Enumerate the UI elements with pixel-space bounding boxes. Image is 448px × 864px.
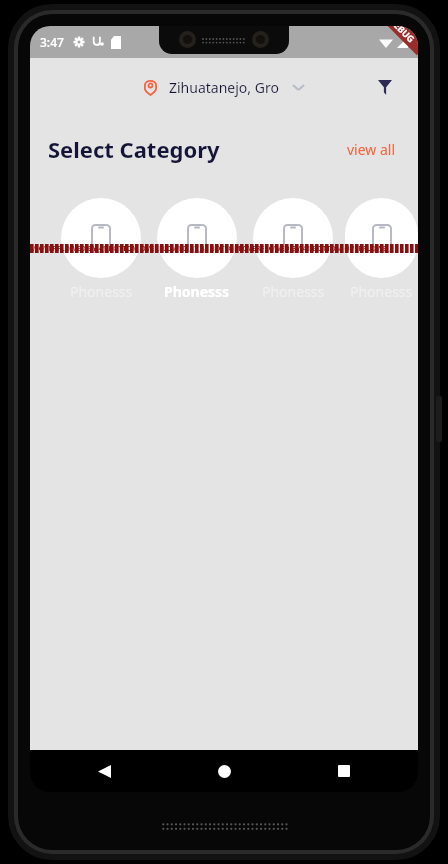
button[interactable]: Phonesss <box>249 198 337 308</box>
staticText: Zihuatanejo, Gro <box>169 78 279 97</box>
button[interactable]: Filter <box>370 72 400 102</box>
button[interactable]: Home <box>206 753 242 789</box>
staticText: Phonesss <box>164 282 230 301</box>
button[interactable]: Zihuatanejo, Gro <box>138 74 310 101</box>
staticText: 3:47 <box>40 34 64 50</box>
staticText: M OVERFLOWED BY 41 BOTTOM OVERFLOWED BY … <box>30 244 387 253</box>
staticText: Select Category <box>48 134 220 164</box>
staticText: Phonesss <box>70 282 133 301</box>
button[interactable]: Recent apps <box>326 753 362 789</box>
button[interactable]: Phonesss <box>345 198 418 308</box>
staticText: DEBUG <box>387 26 418 45</box>
button[interactable]: view all <box>343 137 400 162</box>
button[interactable]: Phonesss <box>153 198 241 308</box>
button[interactable]: Phonesss <box>57 198 145 308</box>
staticText: Phonesss <box>262 282 325 301</box>
staticText: view all <box>347 140 396 159</box>
button[interactable]: Back <box>86 753 122 789</box>
staticText: Phonesss <box>350 282 413 301</box>
